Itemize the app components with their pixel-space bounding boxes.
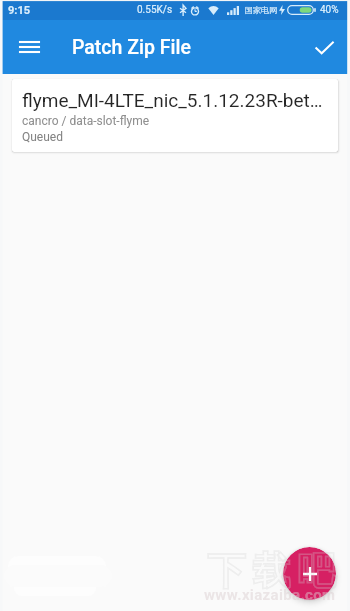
staticText: 40% (320, 4, 339, 16)
staticText: 9:15 (8, 4, 31, 17)
staticText: flyme_MI-4LTE_nic_5.1.12.23R-beta_4.4.4.… (22, 89, 328, 111)
button[interactable]: flyme_MI-4LTE_nic_5.1.12.23R-beta_4.4.4.… (12, 79, 338, 152)
staticText: Patch Zip File (72, 36, 191, 59)
staticText: 0.55K/s (137, 4, 173, 16)
staticText: Queued (22, 130, 63, 144)
staticText: 国家电网 (245, 5, 277, 15)
button[interactable]: Open navigation drawer (5, 23, 53, 71)
staticText: cancro / data-slot-flyme (22, 114, 150, 128)
button[interactable]: Add (283, 547, 336, 600)
button[interactable]: Apply (300, 23, 348, 71)
